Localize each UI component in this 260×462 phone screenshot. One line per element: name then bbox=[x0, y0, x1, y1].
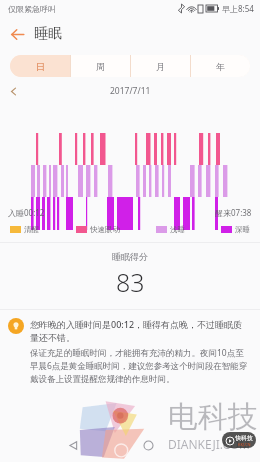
button[interactable]: 年 bbox=[191, 55, 250, 77]
button[interactable]: Home bbox=[137, 434, 159, 456]
staticText: 快速眼动 bbox=[90, 225, 120, 234]
staticText: 您昨晚的入睡时间是00:12，睡得有点晚，不过睡眠质量还不错。 bbox=[30, 318, 250, 343]
staticText: 周 bbox=[96, 61, 105, 72]
staticText: 2017/7/11 bbox=[110, 85, 151, 97]
button[interactable]: Back bbox=[0, 17, 34, 51]
button[interactable]: 月 bbox=[131, 55, 190, 77]
button[interactable]: 周 bbox=[71, 55, 130, 77]
staticText: 睡眠 bbox=[34, 25, 62, 43]
staticText: 入睡00:12 bbox=[8, 207, 45, 218]
staticText: 保证充足的睡眠时间，才能拥有充沛的精力。夜间10点至早晨6点是黄金睡眠时间，建议… bbox=[30, 347, 250, 384]
staticText: 83 bbox=[116, 265, 145, 299]
staticText: 日 bbox=[36, 61, 45, 72]
staticText: 醒来07:38 bbox=[215, 207, 252, 218]
staticText: 快科技 bbox=[235, 434, 253, 442]
staticText: 睡眠得分 bbox=[112, 251, 148, 262]
staticText: 年 bbox=[216, 61, 225, 72]
staticText: 电科技 bbox=[168, 398, 258, 436]
staticText: DIANKEJI.COM bbox=[168, 436, 250, 452]
staticText: 早上8:54 bbox=[222, 3, 254, 14]
button[interactable]: 日 bbox=[10, 55, 70, 77]
staticText: 浅睡 bbox=[170, 225, 185, 234]
staticText: KKJ.CN bbox=[238, 442, 251, 447]
button[interactable]: Back bbox=[62, 434, 84, 456]
staticText: 深睡 bbox=[235, 225, 250, 234]
staticText: 仅限紧急呼叫 bbox=[8, 4, 56, 14]
button[interactable]: Previous day bbox=[0, 81, 26, 101]
staticText: 月 bbox=[156, 61, 165, 72]
staticText: 清醒 bbox=[24, 225, 39, 234]
